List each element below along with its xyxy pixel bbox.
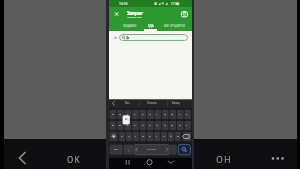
staticText: Осталось 448к xyxy=(127,15,142,18)
staticText: э xyxy=(186,123,188,126)
staticText: п xyxy=(142,123,144,126)
staticText: н xyxy=(149,112,151,115)
staticText: х xyxy=(186,112,188,115)
staticText: й xyxy=(112,112,114,115)
staticText: Вклад xyxy=(172,101,180,105)
button[interactable] xyxy=(14,148,32,166)
button[interactable] xyxy=(119,34,188,41)
staticText: ж xyxy=(179,123,181,126)
staticText: ф xyxy=(112,123,114,126)
staticText: ю xyxy=(177,134,179,137)
staticText: ч xyxy=(128,134,130,137)
staticText: в xyxy=(127,123,129,126)
button[interactable] xyxy=(121,158,133,169)
staticText: т xyxy=(156,134,158,137)
button[interactable]: НЕДАВНО xyxy=(119,22,139,30)
staticText: у xyxy=(127,112,129,115)
staticText: а xyxy=(134,123,136,126)
button[interactable]: ОН xyxy=(215,152,237,167)
button[interactable] xyxy=(165,158,177,169)
button[interactable]: ВСЕ ПРОДУКТЫ xyxy=(161,22,192,30)
staticText: . xyxy=(173,146,174,150)
staticText: б xyxy=(170,134,172,137)
staticText: ЕДА xyxy=(148,24,154,28)
staticText: ц xyxy=(119,112,121,115)
staticText: г xyxy=(156,112,158,115)
button[interactable] xyxy=(179,9,190,19)
staticText: ь xyxy=(163,134,165,137)
staticText: Завтрак xyxy=(127,10,142,16)
staticText: р xyxy=(149,123,151,126)
staticText: 14:05 xyxy=(119,1,128,6)
staticText: 87% xyxy=(171,2,177,6)
staticText: е xyxy=(142,112,144,115)
staticText: о xyxy=(156,123,158,126)
staticText: Русский xyxy=(147,147,157,150)
button[interactable]: ЕДА xyxy=(143,22,159,30)
staticText: с xyxy=(135,134,137,137)
button[interactable] xyxy=(143,158,155,169)
staticText: к xyxy=(134,112,136,115)
staticText: я xyxy=(121,134,123,137)
staticText: д xyxy=(171,123,173,126)
staticText: ОН xyxy=(216,153,233,165)
button[interactable] xyxy=(268,150,290,166)
staticText: и xyxy=(149,134,151,137)
staticText: !#1 xyxy=(114,147,118,150)
staticText: Отмена xyxy=(147,101,157,105)
staticText: , xyxy=(128,147,129,151)
button[interactable] xyxy=(112,9,122,19)
staticText: ВСЕ ПРОДУКТЫ xyxy=(164,24,186,28)
staticText: з xyxy=(179,112,181,115)
staticText: ш xyxy=(164,112,167,115)
staticText: л xyxy=(164,123,166,126)
staticText: ы xyxy=(119,123,121,126)
button[interactable]: OK xyxy=(66,153,86,167)
staticText: щ xyxy=(171,112,174,115)
staticText: OK xyxy=(67,154,81,165)
staticText: ы xyxy=(125,117,128,121)
staticText: Вкл xyxy=(125,101,130,105)
staticText: м xyxy=(142,134,144,137)
button[interactable] xyxy=(178,144,190,155)
staticText: НЕДАВНО xyxy=(123,24,137,28)
